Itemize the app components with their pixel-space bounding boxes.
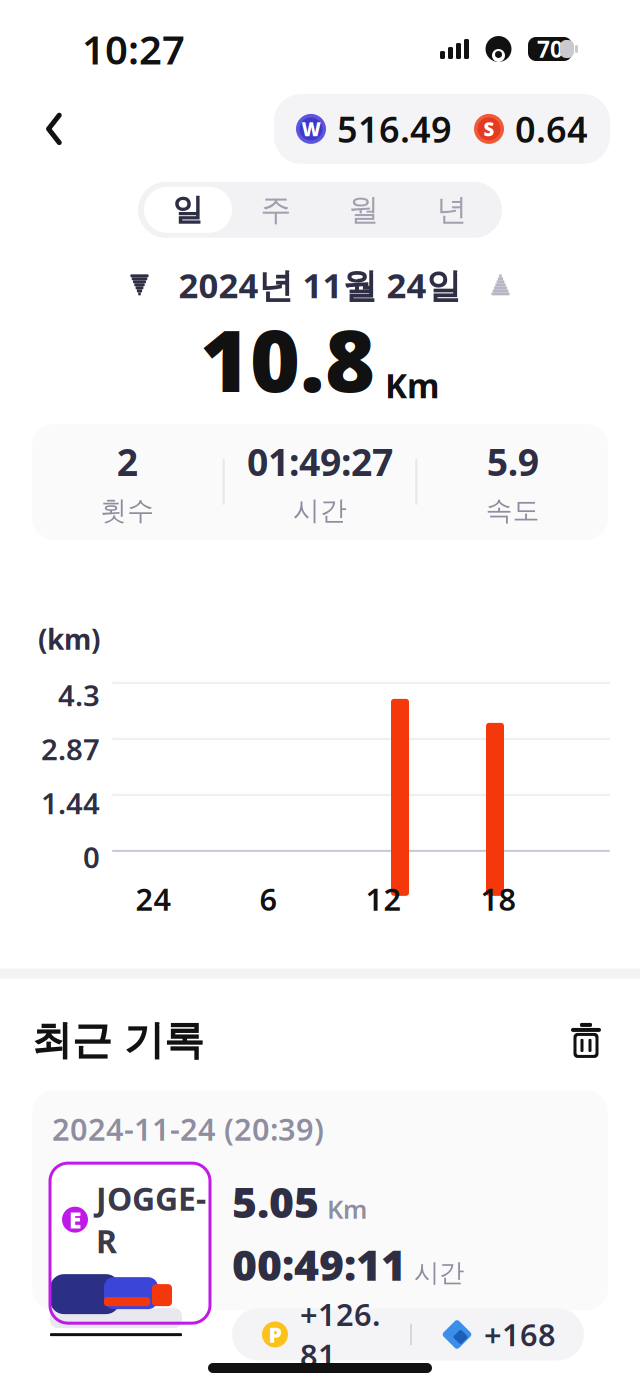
staticText: 2024년 11월 24일	[178, 262, 461, 308]
staticText: JOGGER	[96, 1177, 206, 1262]
button[interactable]: 일	[144, 187, 232, 233]
staticText: (km)	[38, 620, 100, 657]
staticText: 주	[260, 191, 291, 229]
button[interactable]: 월	[320, 187, 408, 233]
staticText: P	[268, 1320, 281, 1349]
staticText: 2024-11-24 (20:39)	[52, 1108, 324, 1149]
staticText: 0.64	[515, 105, 588, 153]
staticText: +168	[484, 1314, 556, 1355]
button[interactable]: 년	[408, 187, 496, 233]
staticText: W	[301, 116, 320, 141]
button[interactable]: Delete records	[558, 1012, 614, 1068]
staticText: 시간	[293, 494, 347, 527]
staticText: S	[483, 116, 494, 141]
button[interactable]: 주	[232, 187, 320, 233]
staticText: 속도	[486, 494, 540, 527]
button[interactable]: Back	[26, 101, 82, 157]
staticText: 횟수	[100, 494, 154, 527]
staticText: 년	[436, 191, 467, 229]
staticText: 1.44	[41, 783, 100, 822]
staticText: 01:49:27	[247, 437, 393, 486]
staticText: 일	[172, 191, 203, 229]
staticText: 18	[480, 878, 516, 919]
staticText: 6	[259, 878, 277, 919]
staticText: 516.49	[337, 105, 452, 153]
staticText: 2.87	[41, 729, 100, 768]
staticText: 12	[365, 878, 401, 919]
staticText: 시간	[414, 1257, 464, 1288]
button[interactable]: Next day	[475, 263, 525, 307]
staticText: 월	[348, 191, 379, 229]
staticText: 0	[83, 837, 100, 876]
staticText: +126.81	[300, 1294, 380, 1375]
staticText: 5.9	[487, 437, 539, 486]
button[interactable]: W	[274, 94, 610, 164]
staticText: 00:49:11	[232, 1236, 406, 1292]
staticText: 4.3	[58, 675, 100, 714]
staticText: E	[69, 1205, 81, 1235]
staticText: Km	[385, 363, 440, 407]
staticText: 10:27	[82, 22, 185, 75]
staticText: 24	[135, 878, 171, 919]
staticText: 최근 기록	[32, 1016, 204, 1065]
staticText: Km	[327, 1192, 367, 1226]
staticText: 2	[117, 437, 138, 486]
button[interactable]: Previous day	[114, 263, 164, 307]
staticText: 70	[537, 34, 563, 64]
staticText: 5.05	[232, 1173, 319, 1230]
button[interactable]: 2024-11-24 (20:39)	[32, 1090, 608, 1310]
staticText: 10.8	[200, 302, 375, 415]
